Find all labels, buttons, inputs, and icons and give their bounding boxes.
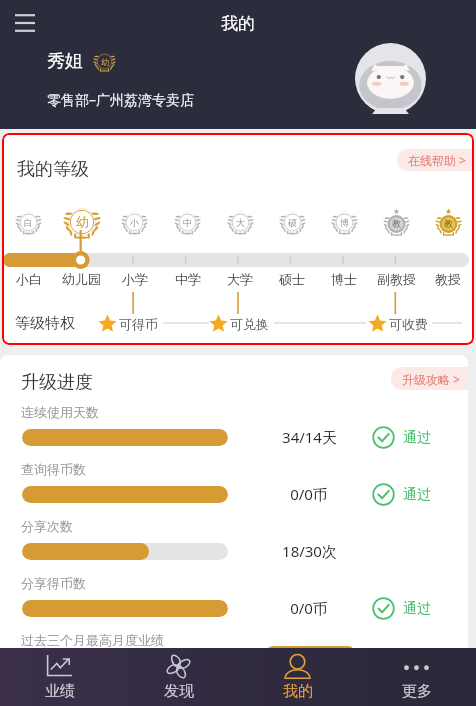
staticText: 等级特权 [15, 314, 75, 333]
staticText: 中学 [175, 271, 201, 287]
staticText: 18/30次 [282, 541, 337, 561]
staticText: 零售部–广州荔湾专卖店 [47, 90, 194, 109]
staticText: 副教授 [377, 271, 416, 287]
button[interactable]: 在线帮助 > [397, 149, 474, 171]
button[interactable]: 升级攻略 > [391, 367, 468, 390]
staticText: 可得币 [119, 316, 158, 332]
staticText: 博士 [331, 271, 357, 287]
staticText: 博 [340, 217, 349, 228]
staticText: 查询得币数 [21, 461, 86, 477]
staticText: 升级进度 [21, 371, 93, 394]
button[interactable]: 我的 [238, 648, 357, 706]
staticText: 教 [392, 218, 401, 229]
staticText: 幼 [101, 57, 109, 67]
staticText: 中 [183, 217, 192, 228]
staticText: 我的等级 [17, 158, 89, 181]
staticText: 大 [236, 217, 245, 228]
staticText: 我的 [221, 13, 255, 34]
staticText: 业绩 [45, 682, 75, 701]
staticText: 小学 [122, 271, 148, 287]
staticText: 硕 [288, 217, 297, 228]
staticText: 分享得币数 [21, 575, 86, 591]
staticText: 小 [130, 217, 139, 228]
staticText: 大学 [227, 271, 253, 287]
staticText: 可兑换 [230, 316, 269, 332]
staticText: 通过 [403, 429, 431, 447]
staticText: 通过 [403, 600, 431, 618]
staticText: 发现 [164, 682, 194, 701]
staticText: 0/0币 [290, 484, 328, 504]
staticText: 过去三个月最高月度业绩 [21, 632, 164, 648]
staticText: 硕士 [279, 271, 305, 287]
staticText: 在线帮助 > [408, 152, 466, 168]
staticText: 幼儿园 [62, 271, 101, 287]
staticText: 秀姐 [47, 50, 83, 73]
staticText: 小白 [16, 271, 42, 287]
staticText: 教 [444, 218, 453, 229]
staticText: 通过 [403, 486, 431, 504]
staticText: 我的 [283, 682, 313, 701]
staticText: 0/0币 [290, 598, 328, 618]
button[interactable]: 业绩 [0, 648, 119, 706]
staticText: 连续使用天数 [21, 404, 99, 420]
button[interactable]: Menu [6, 4, 44, 42]
button[interactable]: 发现 [119, 648, 238, 706]
staticText: 教授 [435, 271, 461, 287]
staticText: 34/14天 [282, 427, 337, 447]
staticText: 幼 [76, 214, 89, 230]
staticText: 升级攻略 > [402, 371, 460, 387]
staticText: 更多 [402, 682, 432, 701]
staticText: 可收费 [389, 316, 428, 332]
button[interactable]: 更多 [357, 648, 476, 706]
staticText: 白 [24, 217, 33, 228]
staticText: 分享次数 [21, 518, 73, 534]
